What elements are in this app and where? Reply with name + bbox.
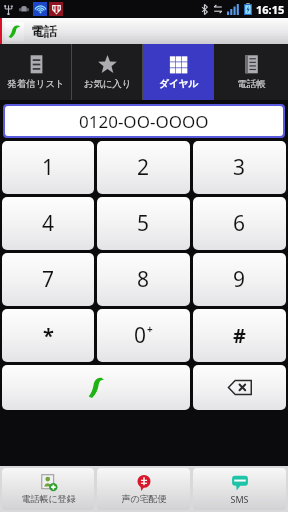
button[interactable]: 4 [2, 197, 94, 250]
button[interactable]: 9 [193, 253, 286, 306]
staticText: 0120-OO-OOOO [79, 110, 209, 133]
staticText: + [147, 322, 153, 336]
staticText: 3 [233, 153, 246, 182]
staticText: 2 [137, 153, 150, 182]
staticText: 6 [233, 209, 246, 238]
button[interactable]: 1 [2, 141, 94, 194]
button[interactable]: ダイヤル [143, 44, 213, 100]
staticText: ダイヤル [159, 78, 198, 90]
staticText: # [233, 322, 246, 349]
button[interactable]: SMS [193, 468, 286, 510]
staticText: 16:15 [256, 2, 285, 17]
staticText: 0 [134, 321, 147, 350]
button[interactable]: 7 [2, 253, 94, 306]
staticText: お気に入り [83, 78, 132, 90]
staticText: SMS [230, 493, 249, 505]
staticText: * [43, 322, 54, 349]
staticText: 8 [137, 265, 150, 294]
button[interactable]: Call [2, 365, 190, 410]
button[interactable]: 6 [193, 197, 286, 250]
staticText: 7 [42, 265, 55, 294]
button[interactable]: 電話帳に登録 [2, 468, 94, 510]
button[interactable]: * [2, 309, 94, 362]
button[interactable]: 0 [97, 309, 190, 362]
staticText: 1 [42, 153, 55, 182]
button[interactable]: # [193, 309, 286, 362]
button[interactable]: 3 [193, 141, 286, 194]
staticText: 電話 [31, 23, 57, 39]
staticText: 4 [42, 209, 55, 238]
button[interactable]: 0120-OO-OOOO [5, 106, 283, 136]
staticText: 声の宅配便 [121, 493, 167, 504]
button[interactable]: 声の宅配便 [97, 468, 190, 510]
staticText: 発着信リスト [7, 78, 65, 90]
staticText: 5 [137, 209, 150, 238]
staticText: 9 [233, 265, 246, 294]
button[interactable]: 5 [97, 197, 190, 250]
button[interactable]: 8 [97, 253, 190, 306]
button[interactable]: 2 [97, 141, 190, 194]
button[interactable]: Delete [193, 365, 286, 410]
button[interactable]: お気に入り [72, 44, 142, 100]
staticText: 電話帳 [237, 78, 266, 90]
button[interactable]: 電話帳 [214, 44, 288, 100]
button[interactable]: 発着信リスト [0, 44, 71, 100]
staticText: 電話帳に登録 [21, 493, 76, 504]
